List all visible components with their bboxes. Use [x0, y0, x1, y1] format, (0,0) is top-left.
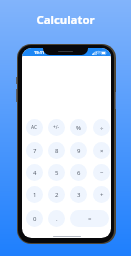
staticText: 1 [33, 191, 37, 199]
staticText: AC [31, 124, 38, 131]
staticText: 3 [77, 191, 81, 199]
button[interactable]: 1 [26, 186, 43, 203]
button[interactable]: 5 [48, 164, 65, 181]
staticText: = [88, 215, 92, 223]
button[interactable]: 8 [48, 142, 65, 159]
button[interactable]: 3 [70, 186, 87, 203]
button[interactable]: × [93, 142, 110, 159]
staticText: 4 [33, 169, 37, 177]
button[interactable]: − [93, 164, 110, 181]
staticText: 7 [33, 147, 37, 155]
staticText: ÷ [100, 124, 104, 132]
button[interactable]: +/- [48, 119, 65, 136]
button[interactable]: 4 [26, 164, 43, 181]
staticText: 6 [77, 169, 81, 177]
button[interactable]: 2 [48, 186, 65, 203]
staticText: Calculator [0, 12, 131, 28]
button[interactable]: + [93, 186, 110, 203]
button[interactable]: . [48, 210, 65, 227]
button[interactable]: AC [26, 119, 43, 136]
staticText: % [76, 124, 81, 132]
button[interactable]: = [70, 210, 109, 227]
button[interactable]: 7 [26, 142, 43, 159]
staticText: × [100, 147, 104, 155]
button[interactable]: 6 [70, 164, 87, 181]
staticText: 8 [55, 147, 59, 155]
staticText: − [100, 169, 104, 177]
staticText: 5 [55, 169, 59, 177]
button[interactable]: 9 [70, 142, 87, 159]
staticText: + [100, 191, 104, 199]
staticText: 0 [33, 215, 37, 223]
button[interactable]: 0 [26, 210, 43, 227]
staticText: +/- [53, 124, 60, 131]
staticText: 2 [55, 191, 59, 199]
staticText: . [56, 215, 58, 223]
button[interactable]: ÷ [93, 119, 110, 136]
staticText: 19:11 [34, 50, 45, 55]
staticText: 9 [77, 147, 81, 155]
button[interactable]: % [70, 119, 87, 136]
other: Signal, wifi and battery [92, 51, 106, 55]
